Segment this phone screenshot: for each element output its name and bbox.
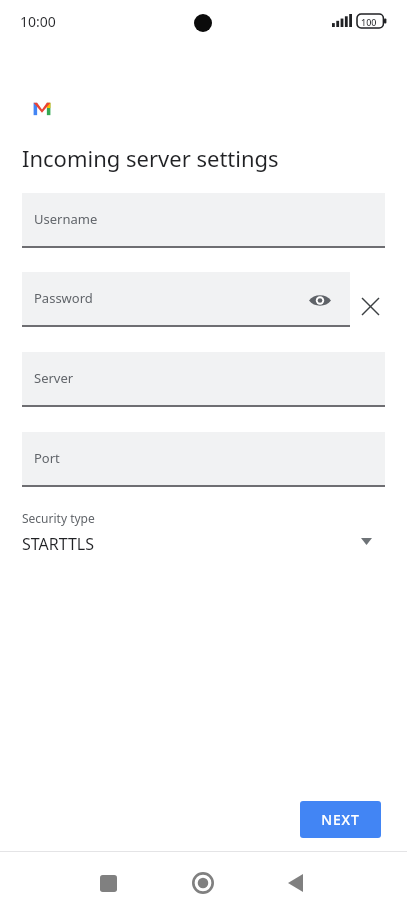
button[interactable]: Recent apps xyxy=(88,863,128,903)
staticText: 100 xyxy=(361,16,377,28)
button[interactable]: Clear password xyxy=(355,291,385,321)
button[interactable]: Port xyxy=(22,432,385,487)
button[interactable]: Username xyxy=(22,193,385,248)
staticText: NEXT xyxy=(321,810,360,829)
staticText: 10:00 xyxy=(20,12,56,31)
staticText: Password xyxy=(34,289,93,307)
staticText: Username xyxy=(34,210,98,228)
staticText: Security type xyxy=(22,510,95,526)
button[interactable]: NEXT xyxy=(300,801,381,838)
button[interactable]: Show password xyxy=(304,284,336,316)
staticText: Port xyxy=(34,449,60,467)
button[interactable]: Home xyxy=(183,863,223,903)
staticText: Server xyxy=(34,369,74,387)
button[interactable]: Back xyxy=(275,863,315,903)
button[interactable]: Server xyxy=(22,352,385,407)
staticText: Incoming server settings xyxy=(22,143,279,173)
button[interactable]: Password xyxy=(22,272,350,327)
button[interactable]: Security type xyxy=(22,508,385,560)
staticText: STARTTLS xyxy=(22,533,95,555)
